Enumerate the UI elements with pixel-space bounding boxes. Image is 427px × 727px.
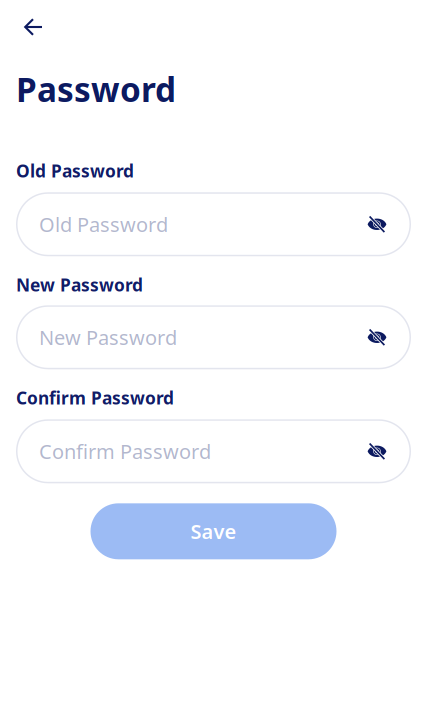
button[interactable]: Show Confirm Password (354, 421, 411, 482)
button[interactable]: Back (0, 0, 59, 50)
staticText: Password (16, 67, 176, 111)
staticText: New Password (39, 324, 177, 351)
staticText: Old Password (16, 159, 134, 182)
staticText: Confirm Password (39, 438, 211, 465)
button[interactable]: New Password (16, 305, 411, 369)
button[interactable]: Show New Password (354, 307, 411, 368)
button[interactable]: Show Old Password (354, 194, 411, 255)
staticText: Confirm Password (16, 386, 174, 409)
button[interactable]: Old Password (16, 192, 411, 256)
button[interactable]: Save (90, 503, 336, 559)
button[interactable]: Confirm Password (16, 419, 411, 483)
staticText: New Password (16, 273, 143, 296)
staticText: Save (190, 518, 236, 545)
staticText: Old Password (39, 211, 168, 238)
